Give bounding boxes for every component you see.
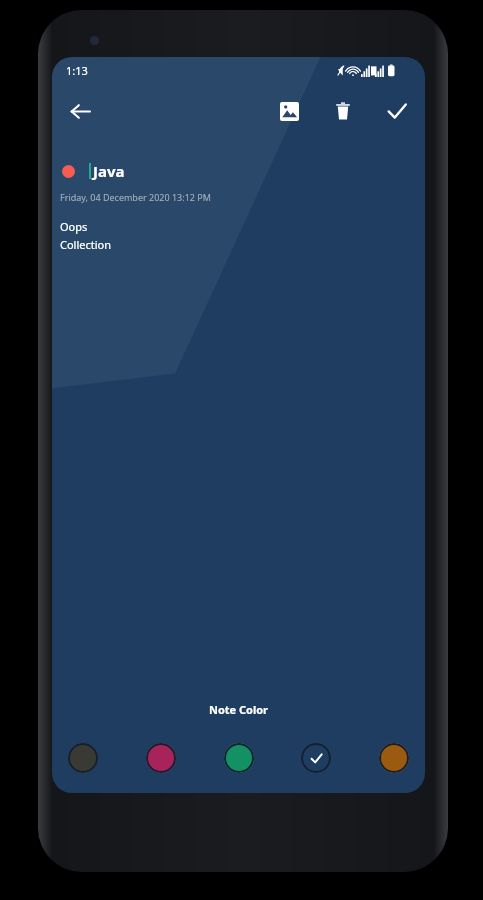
staticText: Oops [60, 219, 88, 234]
button[interactable]: Note color 5 [377, 741, 411, 775]
staticText: Friday, 04 December 2020 13:12 PM [60, 191, 211, 203]
button[interactable]: Save note [375, 89, 419, 133]
staticText: Collection [60, 237, 112, 252]
staticText: Note Color [52, 702, 425, 717]
button[interactable]: Note color 3 [222, 741, 256, 775]
button[interactable]: Add image [267, 89, 311, 133]
staticText: Java [93, 161, 125, 181]
button[interactable]: Note color 1 [66, 741, 100, 775]
button[interactable]: Delete [321, 89, 365, 133]
staticText: 1:13 [66, 63, 88, 78]
button[interactable]: Back [58, 89, 102, 133]
button[interactable]: Note color 2 [144, 741, 178, 775]
button[interactable]: Note color 4 [299, 741, 333, 775]
